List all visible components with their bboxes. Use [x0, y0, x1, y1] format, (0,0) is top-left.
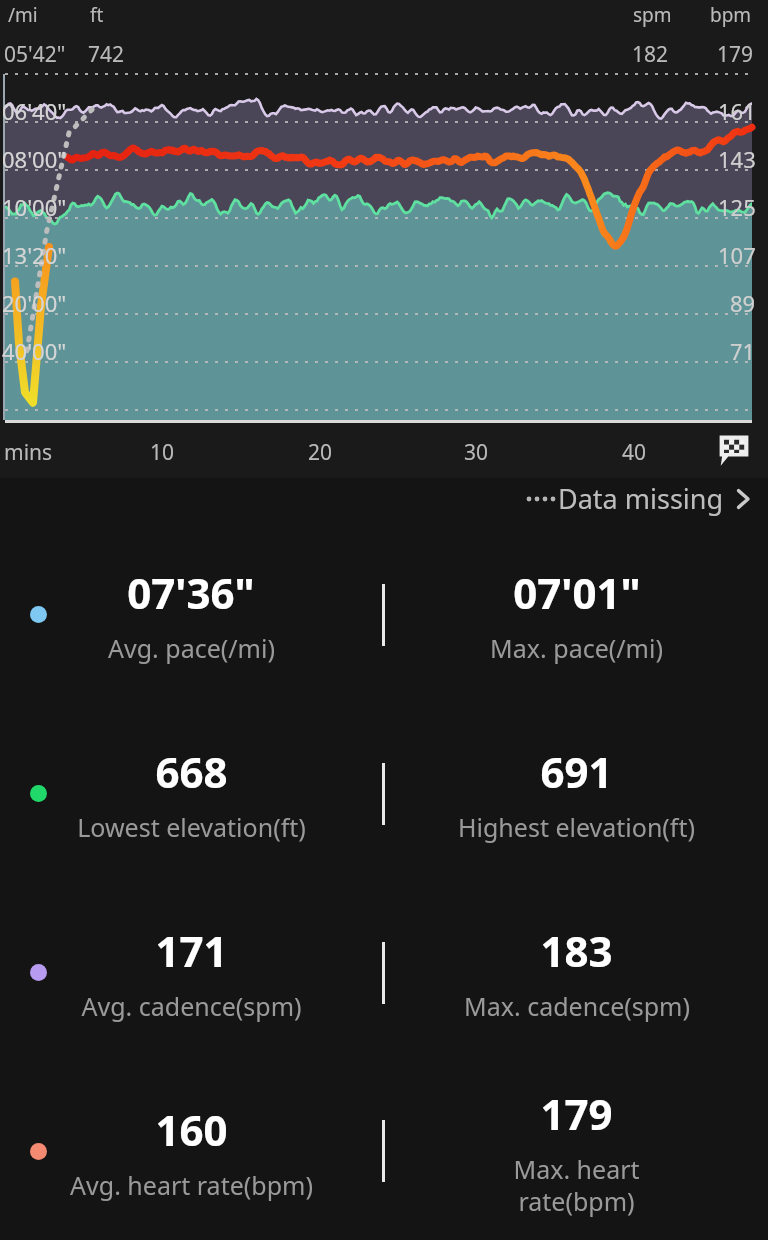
- staticText: 179: [717, 40, 754, 69]
- staticText: 07'36": [127, 564, 255, 621]
- staticText: 179: [540, 1085, 613, 1142]
- staticText: 107: [718, 240, 756, 270]
- staticText: 07'01": [513, 564, 641, 621]
- staticText: 125: [718, 192, 756, 222]
- button[interactable]: Data missing: [0, 478, 768, 519]
- staticText: /mi: [8, 2, 38, 28]
- staticText: 143: [718, 144, 756, 174]
- staticText: 20'00": [2, 288, 67, 318]
- staticText: spm: [633, 2, 672, 28]
- staticText: 89: [730, 288, 756, 318]
- button[interactable]: 668: [0, 704, 768, 883]
- staticText: Data missing: [558, 480, 724, 517]
- button[interactable]: 160: [0, 1062, 768, 1240]
- staticText: 10'00": [2, 192, 67, 222]
- staticText: 05'42": [4, 40, 66, 69]
- button[interactable]: Finish: [716, 432, 752, 468]
- button[interactable]: 07'36": [0, 525, 768, 704]
- staticText: 161: [718, 96, 756, 126]
- staticText: 742: [88, 40, 125, 69]
- staticText: 20: [308, 438, 333, 467]
- staticText: 13'20": [2, 240, 67, 270]
- staticText: Max. pace(/mi): [490, 631, 663, 665]
- button[interactable]: 171: [0, 883, 768, 1062]
- staticText: 71: [730, 336, 756, 366]
- staticText: 08'00": [2, 144, 67, 174]
- staticText: Max. heart rate(bpm): [513, 1152, 640, 1218]
- staticText: Max. cadence(spm): [464, 989, 690, 1023]
- staticText: 160: [155, 1101, 228, 1158]
- staticText: Avg. cadence(spm): [81, 989, 302, 1023]
- staticText: 30: [464, 438, 489, 467]
- staticText: 691: [540, 743, 613, 800]
- staticText: bpm: [710, 2, 752, 28]
- staticText: 40'00": [2, 336, 67, 366]
- staticText: 10: [150, 438, 175, 467]
- staticText: ft: [90, 2, 104, 28]
- staticText: 668: [155, 743, 228, 800]
- staticText: Highest elevation(ft): [458, 810, 695, 844]
- staticText: 171: [155, 922, 228, 979]
- staticText: 06'40": [2, 96, 67, 126]
- staticText: Lowest elevation(ft): [77, 810, 306, 844]
- staticText: mins: [4, 438, 53, 467]
- staticText: 182: [632, 40, 669, 69]
- staticText: Avg. heart rate(bpm): [70, 1168, 313, 1202]
- staticText: Avg. pace(/mi): [108, 631, 275, 665]
- staticText: 40: [622, 438, 647, 467]
- staticText: 183: [540, 922, 613, 979]
